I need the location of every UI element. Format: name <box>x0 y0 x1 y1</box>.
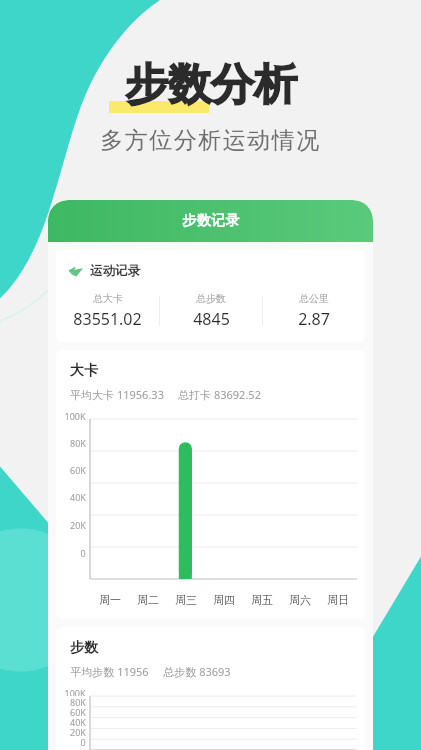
staticText: 80K <box>70 437 86 449</box>
staticText: 步数记录 <box>182 212 240 230</box>
staticText: 2.87 <box>298 308 330 330</box>
staticText: 平均步数 11956 <box>70 664 149 679</box>
staticText: 80K <box>70 696 86 706</box>
button[interactable]: 步数记录 <box>48 200 373 242</box>
staticText: 0 <box>80 547 86 559</box>
staticText: 100K <box>64 410 86 422</box>
button[interactable]: Activity record <box>56 250 365 342</box>
staticText: 40K <box>70 716 86 726</box>
staticText: 周三 <box>175 593 197 607</box>
staticText: 0 <box>80 736 86 746</box>
staticText: 20K <box>70 726 86 736</box>
staticText: 总大卡 <box>93 292 123 305</box>
staticText: 周一 <box>99 593 121 607</box>
staticText: 总公里 <box>299 292 329 305</box>
staticText: 周六 <box>289 593 311 607</box>
staticText: 步数 <box>70 639 98 657</box>
staticText: 总步数 <box>196 292 226 305</box>
button[interactable]: 步数 <box>56 627 365 750</box>
staticText: 总打卡 83692.52 <box>178 387 261 402</box>
staticText: 4845 <box>193 308 230 330</box>
staticText: 周二 <box>137 593 159 607</box>
staticText: 60K <box>70 464 86 476</box>
staticText: 总步数 83693 <box>163 664 231 679</box>
staticText: 运动记录 <box>90 263 140 279</box>
staticText: 20K <box>70 519 86 531</box>
staticText: 多方位分析运动情况 <box>100 126 321 155</box>
staticText: 平均大卡 11956.33 <box>70 387 164 402</box>
button[interactable]: 大卡 <box>56 350 365 619</box>
staticText: 100K <box>64 687 86 696</box>
staticText: 60K <box>70 706 86 716</box>
staticText: 83551.02 <box>73 308 142 330</box>
other: Activity record <box>68 266 83 277</box>
staticText: 大卡 <box>70 362 98 380</box>
staticText: 周四 <box>213 593 235 607</box>
staticText: 步数分析 <box>125 58 297 112</box>
staticText: 周日 <box>327 593 349 607</box>
staticText: 周五 <box>251 593 273 607</box>
staticText: 40K <box>70 491 86 503</box>
